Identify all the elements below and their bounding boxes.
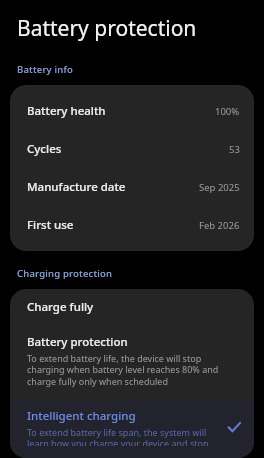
staticText: To extend battery life span, the system … xyxy=(27,426,218,446)
button[interactable]: Battery health xyxy=(10,92,254,130)
button[interactable]: Battery protection xyxy=(10,325,254,399)
staticText: Feb 2026 xyxy=(199,219,240,232)
staticText: Battery protection xyxy=(17,14,197,43)
staticText: 53 xyxy=(229,143,240,156)
staticText: Charge fully xyxy=(27,299,94,315)
staticText: Intelligent charging xyxy=(27,408,136,424)
button[interactable]: Intelligent charging xyxy=(10,399,254,458)
staticText: Manufacture date xyxy=(27,179,126,195)
staticText: To extend battery life, the device will … xyxy=(27,352,222,388)
staticText: Sep 2025 xyxy=(199,181,240,194)
other: Selected xyxy=(224,417,244,437)
staticText: Cycles xyxy=(27,141,62,157)
staticText: 100% xyxy=(215,105,240,118)
button[interactable]: First use xyxy=(10,206,254,244)
staticText: First use xyxy=(27,217,74,233)
button[interactable]: Manufacture date xyxy=(10,168,254,206)
staticText: Battery health xyxy=(27,103,106,119)
button[interactable]: Cycles xyxy=(10,130,254,168)
button[interactable]: Charge fully xyxy=(10,289,254,325)
staticText: Charging protection xyxy=(17,267,113,280)
staticText: Battery protection xyxy=(27,334,128,350)
staticText: Battery info xyxy=(17,63,73,76)
